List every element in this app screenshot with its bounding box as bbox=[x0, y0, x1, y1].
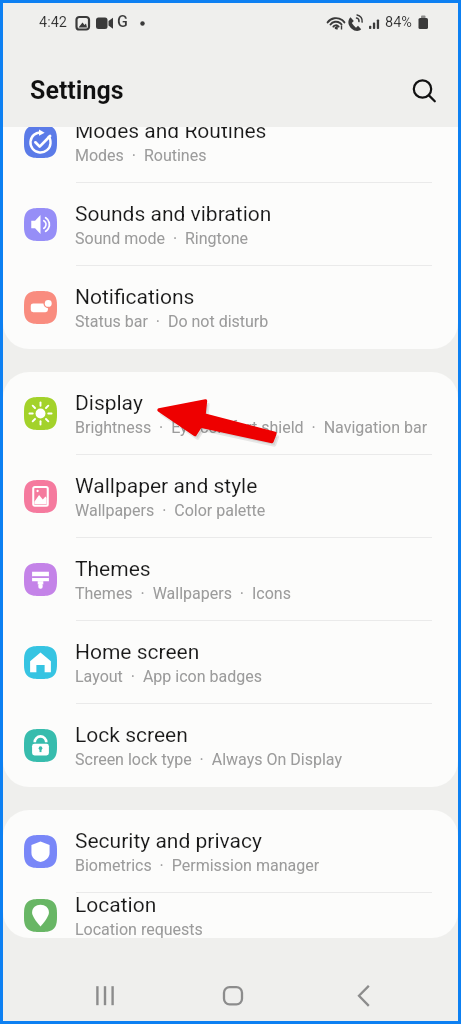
button[interactable]: Modes and Routines bbox=[3, 127, 458, 183]
staticText: 84% bbox=[385, 14, 412, 31]
staticText: Security and privacy bbox=[75, 829, 262, 854]
staticText: Sound mode · Ringtone bbox=[75, 229, 249, 248]
staticText: G bbox=[117, 12, 128, 31]
staticText: Notifications bbox=[75, 285, 195, 310]
button[interactable]: Wallpaper and style bbox=[3, 455, 458, 538]
button[interactable]: Sounds and vibration bbox=[3, 183, 458, 266]
staticText: Modes and Routines bbox=[75, 127, 267, 144]
staticText: Home screen bbox=[75, 640, 200, 665]
staticText: Location bbox=[75, 893, 157, 918]
button[interactable]: Lock screen bbox=[3, 704, 458, 787]
staticText: Wallpaper and style bbox=[75, 474, 258, 499]
button[interactable]: Location bbox=[3, 893, 458, 938]
staticText: Lock screen bbox=[75, 723, 188, 748]
button[interactable]: Display bbox=[3, 372, 458, 455]
staticText: Status bar · Do not disturb bbox=[75, 312, 269, 331]
button[interactable]: Notifications bbox=[3, 266, 458, 349]
staticText: Settings bbox=[30, 76, 124, 105]
button[interactable]: Security and privacy bbox=[3, 810, 458, 893]
staticText: Brightness · Eye comfort shield · Naviga… bbox=[75, 418, 428, 437]
button[interactable]: Home screen bbox=[3, 621, 458, 704]
staticText: Themes · Wallpapers · Icons bbox=[75, 584, 291, 603]
staticText: Location requests bbox=[75, 920, 203, 938]
button[interactable]: Recent apps bbox=[82, 969, 130, 1017]
staticText: Themes bbox=[75, 557, 151, 582]
staticText: Wallpapers · Color palette bbox=[75, 501, 266, 520]
button[interactable]: Search bbox=[402, 69, 446, 113]
staticText: Screen lock type · Always On Display bbox=[75, 750, 342, 769]
staticText: Sounds and vibration bbox=[75, 202, 272, 227]
staticText: 4:42 bbox=[39, 14, 67, 31]
button[interactable]: Home bbox=[209, 969, 257, 1017]
button[interactable]: Back bbox=[341, 969, 389, 1017]
staticText: Modes · Routines bbox=[75, 146, 207, 165]
staticText: Display bbox=[75, 391, 143, 416]
button[interactable]: Themes bbox=[3, 538, 458, 621]
staticText: Layout · App icon badges bbox=[75, 667, 262, 686]
staticText: Biometrics · Permission manager bbox=[75, 856, 320, 875]
